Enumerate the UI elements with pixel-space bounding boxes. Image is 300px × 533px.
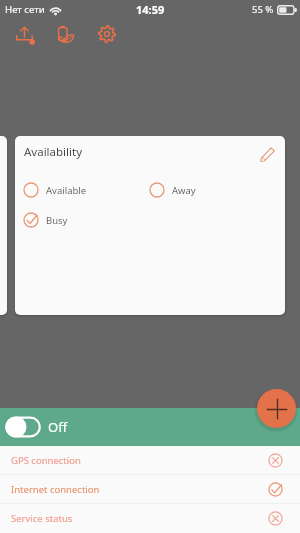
button[interactable]: Battery saver <box>49 18 81 50</box>
staticText: 14:59 <box>136 2 165 17</box>
button[interactable]: Away <box>149 179 259 201</box>
button[interactable]: Off <box>5 414 68 440</box>
button[interactable]: Export <box>9 18 41 50</box>
staticText: GPS connection <box>11 454 81 467</box>
staticText: 55 % <box>252 3 274 16</box>
button[interactable]: Service status <box>0 504 300 532</box>
staticText: Available <box>46 184 87 197</box>
staticText: Busy <box>46 214 68 227</box>
button[interactable]: Busy <box>23 209 133 231</box>
staticText: Service status <box>11 512 73 525</box>
staticText: Away <box>172 184 196 197</box>
staticText: Нет сети <box>5 3 45 16</box>
button[interactable]: Internet connection <box>0 475 300 503</box>
button[interactable]: Add <box>257 389 296 428</box>
button[interactable]: GPS connection <box>0 446 300 474</box>
button[interactable]: Settings <box>91 18 123 50</box>
button[interactable]: Available <box>23 179 133 201</box>
button[interactable]: Edit <box>253 140 281 168</box>
staticText: Availability <box>24 144 83 160</box>
staticText: Internet connection <box>11 483 100 496</box>
staticText: Off <box>48 418 68 436</box>
